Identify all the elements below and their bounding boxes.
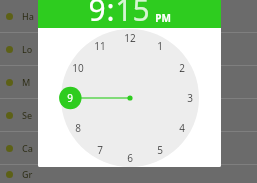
button[interactable]: PM xyxy=(150,11,171,25)
button[interactable]: Clock dial, 9 o'clock selected xyxy=(61,29,199,167)
staticText: 1 xyxy=(157,39,163,53)
button[interactable]: 9 xyxy=(60,88,80,108)
staticText: PM xyxy=(155,11,171,25)
button[interactable]: Ha xyxy=(0,0,257,32)
button[interactable]: 1 xyxy=(150,36,170,56)
button[interactable]: 6 xyxy=(120,148,140,167)
staticText: M xyxy=(22,76,31,88)
staticText: Se xyxy=(22,109,33,121)
button[interactable]: Se xyxy=(0,99,257,131)
staticText: 8 xyxy=(75,121,81,135)
staticText: 12 xyxy=(124,31,136,45)
staticText: 9 xyxy=(88,0,106,30)
button[interactable]: 5 xyxy=(150,140,170,160)
button[interactable]: 2 xyxy=(172,58,192,78)
button[interactable]: M xyxy=(0,66,257,98)
staticText: 9 xyxy=(67,91,73,105)
staticText: Ca xyxy=(22,142,33,154)
staticText: 4 xyxy=(179,121,185,135)
staticText: 7 xyxy=(97,143,103,157)
staticText: 3 xyxy=(187,91,193,105)
button[interactable]: 10 xyxy=(68,58,88,78)
staticText: Gr xyxy=(22,168,33,180)
button[interactable]: 8 xyxy=(68,118,88,138)
staticText: : xyxy=(106,0,115,30)
staticText: 15 xyxy=(115,0,150,30)
staticText: 2 xyxy=(179,61,185,75)
staticText: 5 xyxy=(157,143,163,157)
button[interactable]: 12 xyxy=(120,28,140,48)
button[interactable]: 7 xyxy=(90,140,110,160)
button[interactable]: 15 xyxy=(115,0,150,30)
button[interactable]: 4 xyxy=(172,118,192,138)
button[interactable]: Ca xyxy=(0,132,257,164)
staticText: 10 xyxy=(72,61,84,75)
staticText: Lo xyxy=(22,43,33,55)
button[interactable]: Lo xyxy=(0,33,257,65)
button[interactable]: 3 xyxy=(180,88,200,108)
button[interactable]: 11 xyxy=(90,36,110,56)
staticText: 6 xyxy=(127,151,133,165)
staticText: Ha xyxy=(22,10,34,22)
staticText: 11 xyxy=(94,39,106,53)
button[interactable]: Gr xyxy=(0,165,257,183)
